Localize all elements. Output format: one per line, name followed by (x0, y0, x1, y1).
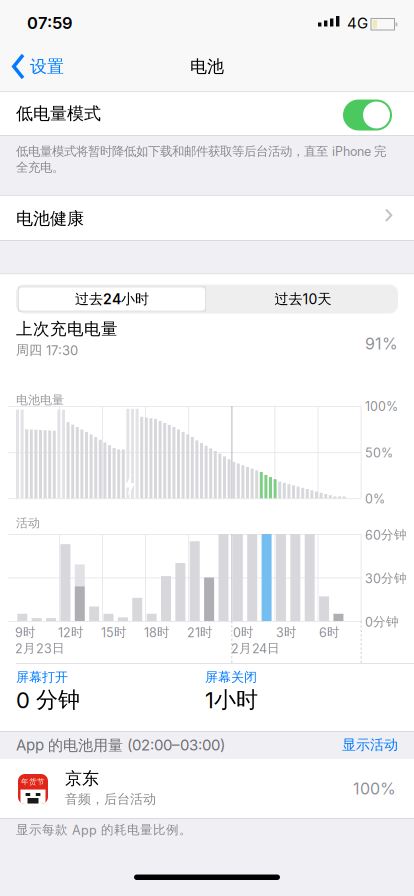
button[interactable]: 过去24小时 (18, 286, 206, 311)
staticText: 4G (347, 14, 368, 32)
staticText: 07:59 (27, 13, 73, 33)
button[interactable]: 电池健康 (0, 196, 414, 240)
staticText: 2月24日 (231, 640, 280, 656)
staticText: 6时 (319, 624, 340, 640)
staticText: 低电量模式 (16, 103, 101, 124)
button[interactable]: 设置 (12, 55, 64, 78)
staticText: 周四 17:30 (16, 342, 78, 358)
staticText: 屏幕关闭 (205, 669, 257, 685)
staticText: 18时 (144, 624, 170, 640)
staticText: 京东 (65, 768, 99, 789)
staticText: 0时 (233, 624, 254, 640)
staticText: 9时 (15, 624, 36, 640)
staticText: 100% (353, 779, 396, 798)
staticText: App 的电池用量 (02:00–03:00) (16, 736, 225, 755)
staticText: 屏幕打开 (16, 669, 68, 685)
staticText: 91% (365, 334, 398, 353)
staticText: 全充电。 (16, 159, 64, 175)
staticText: 音频，后台活动 (65, 791, 156, 807)
staticText: 电池电量 (16, 392, 64, 408)
staticText: 电池健康 (16, 208, 84, 229)
staticText: 2月23日 (15, 640, 65, 656)
button[interactable]: 年货节 (0, 759, 414, 818)
staticText: 0% (365, 491, 385, 507)
staticText: 年货节 (21, 777, 45, 786)
staticText: 电池 (190, 56, 224, 77)
staticText: 1小时 (205, 686, 258, 714)
staticText: 低电量模式将暂时降低如下载和邮件获取等后台活动，直至 iPhone 完 (16, 143, 386, 159)
staticText: 设置 (30, 56, 64, 77)
button[interactable]: 低电量模式 (343, 99, 392, 130)
staticText: 3时 (276, 624, 297, 640)
staticText: 15时 (101, 624, 127, 640)
staticText: 21时 (187, 624, 213, 640)
staticText: 活动 (16, 515, 40, 531)
staticText: 显示活动 (342, 736, 398, 754)
button[interactable]: 过去10天 (208, 284, 398, 313)
staticText: 0分钟 (365, 614, 399, 630)
staticText: 显示每款 App 的耗电量比例。 (16, 822, 192, 838)
staticText: 50% (365, 445, 393, 461)
staticText: 过去10天 (274, 290, 331, 308)
staticText: 30分钟 (365, 570, 407, 586)
staticText: 100% (365, 399, 398, 414)
staticText: 0 分钟 (16, 686, 80, 714)
staticText: 12时 (58, 624, 84, 640)
button[interactable]: 显示活动 (278, 736, 398, 754)
staticText: 60分钟 (365, 527, 407, 543)
staticText: 上次充电电量 (16, 318, 118, 339)
staticText: 过去24小时 (75, 290, 149, 308)
